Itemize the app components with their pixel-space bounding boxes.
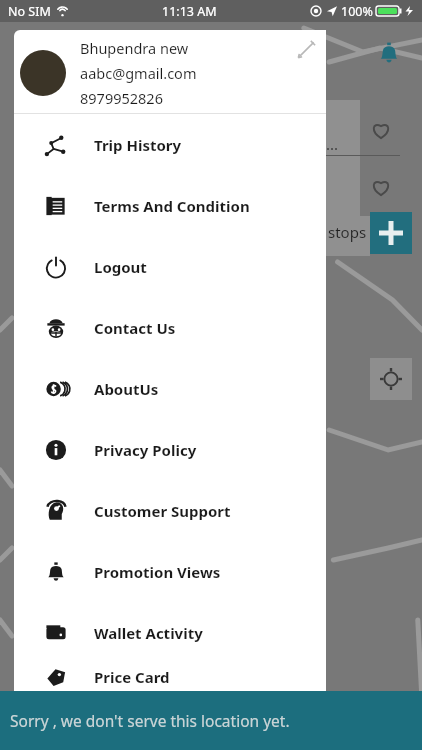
staticText: ... [326,134,339,154]
button[interactable]: Notifications [376,40,402,66]
staticText: Terms And Condition [94,196,250,216]
staticText: Sorry , we don't serve this location yet… [10,710,290,731]
staticText: Trip History [94,135,182,155]
button[interactable]: Terms And Condition [14,175,326,236]
staticText: Customer Support [94,501,231,521]
staticText: No SIM [8,3,51,20]
button[interactable]: Promotion Views [14,541,326,602]
staticText: 100% [341,3,373,20]
staticText: Bhupendra new [80,38,189,58]
button[interactable]: Sorry , we don't serve this location yet… [0,691,422,750]
staticText: aabc@gmail.com [80,63,197,83]
staticText: Wallet Activity [94,623,203,643]
button[interactable]: Add stop [370,212,412,254]
button[interactable]: Customer Support [14,480,326,541]
staticText: Promotion Views [94,562,221,582]
staticText: AboutUs [94,379,159,399]
staticText: Logout [94,257,147,277]
staticText: Price Card [94,667,170,687]
button[interactable]: Price Card [14,663,326,691]
button[interactable]: Wallet Activity [14,602,326,663]
staticText: Privacy Policy [94,440,197,460]
button[interactable]: Privacy Policy [14,419,326,480]
staticText: stops [328,222,367,242]
button[interactable]: Contact Us [14,297,326,358]
staticText: 11:13 AM [162,3,217,20]
button[interactable]: Trip History [14,114,326,175]
staticText: Contact Us [94,318,176,338]
staticText: 8979952826 [80,88,163,108]
button[interactable]: Profile photo [20,50,66,96]
button[interactable]: My location [370,358,412,400]
button[interactable]: AboutUs [14,358,326,419]
button[interactable]: Logout [14,236,326,297]
button[interactable]: Edit profile [294,38,318,62]
